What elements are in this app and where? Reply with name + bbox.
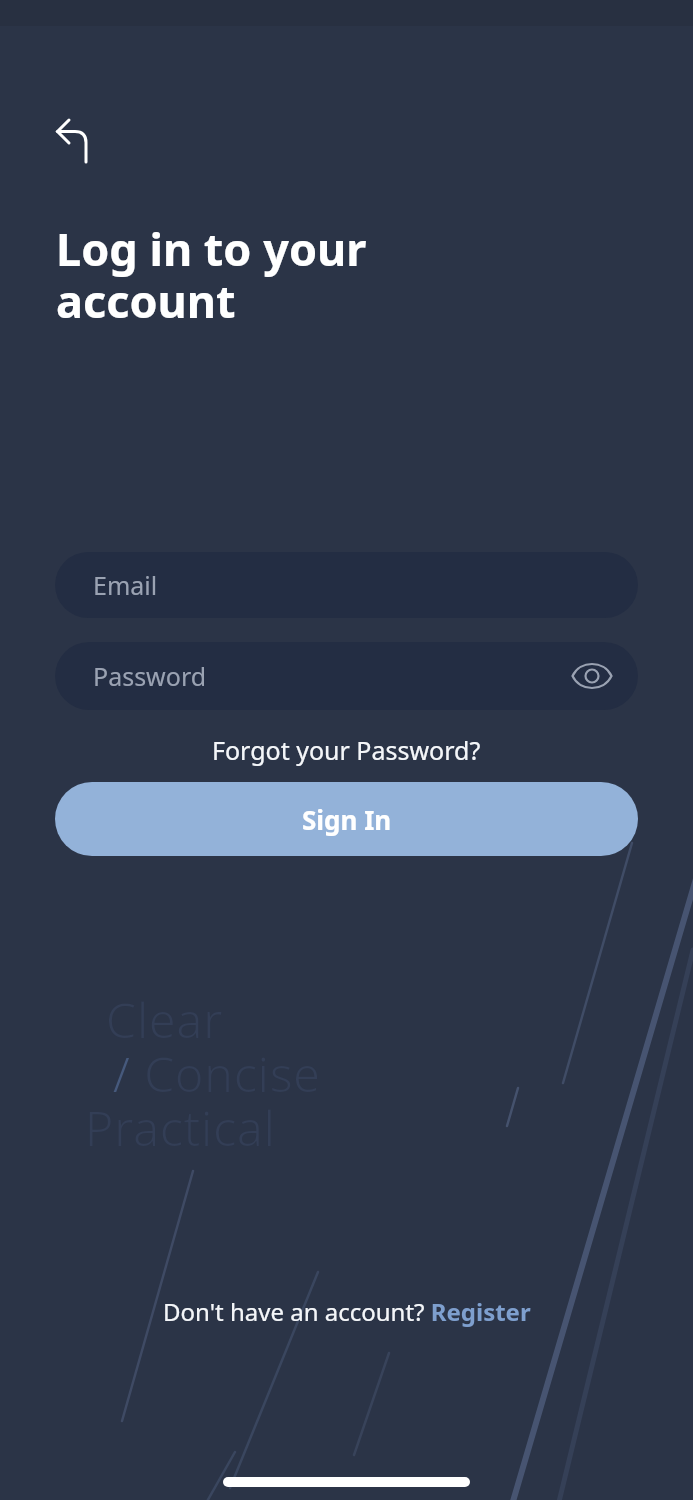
staticText: Clear: [106, 987, 224, 1052]
button[interactable]: Password: [55, 642, 638, 710]
button[interactable]: Forgot your Password?: [212, 733, 481, 767]
staticText: / Concise: [113, 1041, 321, 1106]
staticText: Don't have an account? Register: [163, 1295, 531, 1328]
button[interactable]: [569, 653, 615, 699]
staticText: Password: [93, 659, 207, 693]
staticText: Email: [93, 568, 158, 602]
button[interactable]: Don't have an account? Register: [163, 1295, 531, 1328]
staticText: Sign In: [302, 802, 392, 837]
button[interactable]: [44, 110, 100, 166]
staticText: Log in to your account: [56, 218, 367, 331]
staticText: Forgot your Password?: [212, 733, 481, 767]
button[interactable]: Sign In: [55, 782, 638, 856]
button[interactable]: Email: [55, 552, 638, 618]
staticText: Practical: [85, 1095, 276, 1160]
